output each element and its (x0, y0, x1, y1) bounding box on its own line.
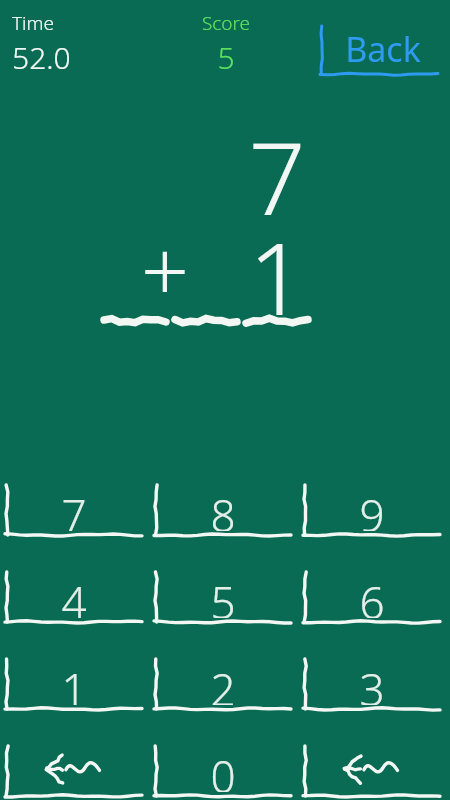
staticText: 6 (359, 572, 385, 618)
button[interactable]: 2 (154, 659, 291, 711)
button[interactable]: 0 (154, 746, 291, 798)
staticText: 5 (210, 572, 236, 618)
staticText: Time (12, 10, 54, 36)
staticText: 1 (61, 659, 87, 705)
staticText: Back (345, 26, 421, 69)
staticText: 5 (186, 37, 266, 78)
button[interactable]: 1 (5, 659, 142, 711)
button[interactable]: 9 (303, 485, 440, 537)
button[interactable]: 5 (154, 572, 291, 624)
staticText: 8 (210, 485, 236, 531)
staticText: 4 (61, 572, 87, 618)
staticText: 52.0 (12, 37, 71, 78)
staticText: 7 (232, 108, 322, 244)
button[interactable]: Backspace (5, 746, 142, 798)
staticText: + (120, 212, 210, 326)
button[interactable]: Backspace (303, 746, 440, 798)
button[interactable]: Back (320, 26, 438, 76)
staticText: 2 (210, 659, 236, 705)
staticText: 9 (359, 485, 385, 531)
button[interactable]: 7 (5, 485, 142, 537)
button[interactable]: 8 (154, 485, 291, 537)
staticText: 3 (359, 659, 385, 705)
staticText: 1 (232, 208, 322, 344)
staticText: 0 (210, 746, 236, 792)
button[interactable]: 3 (303, 659, 440, 711)
button[interactable]: 4 (5, 572, 142, 624)
staticText: Score (186, 10, 266, 36)
button[interactable]: 6 (303, 572, 440, 624)
staticText: 7 (61, 485, 87, 531)
